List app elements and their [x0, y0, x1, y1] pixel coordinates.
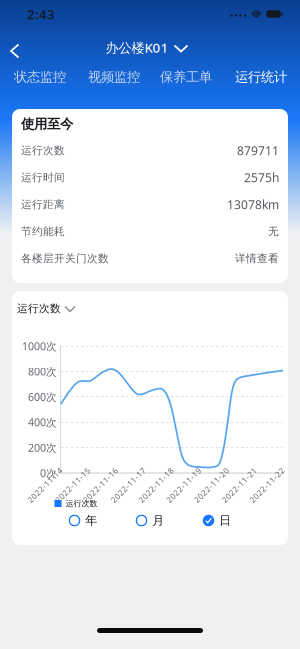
staticText: 运行统计 [235, 69, 287, 85]
button[interactable]: 各楼层开关门次数 [21, 245, 279, 272]
staticText: 2:43 [27, 5, 55, 23]
staticText: 各楼层开关门次数 [21, 252, 109, 265]
staticText: 2022-11-15 [50, 480, 96, 490]
button[interactable]: 运行统计 [231, 65, 291, 89]
button[interactable]: 办公楼K01 [105, 33, 187, 62]
staticText: 2022-11-19 [161, 480, 207, 490]
staticText: 2022-11-22 [244, 480, 290, 490]
staticText: 13078km [227, 196, 279, 212]
staticText: 运行次数 [65, 499, 97, 508]
staticText: 800次 [28, 364, 57, 378]
button[interactable]: Back [0, 28, 28, 57]
button[interactable]: 年 [65, 509, 101, 532]
staticText: 2022-11-17 [105, 480, 151, 490]
staticText: 无 [268, 225, 279, 238]
button[interactable]: 视频监控 [84, 65, 144, 89]
staticText: 节约能耗 [21, 225, 65, 238]
staticText: 1000次 [22, 339, 57, 353]
staticText: 日 [219, 513, 231, 528]
button[interactable]: 月 [132, 509, 168, 532]
staticText: 2022-11-20 [188, 480, 234, 490]
staticText: 运行次数 [21, 144, 65, 157]
staticText: 保养工单 [160, 69, 212, 85]
staticText: 2575h [244, 169, 279, 185]
button[interactable]: 保养工单 [156, 65, 216, 89]
staticText: 2022-11-14 [22, 480, 68, 490]
button[interactable]: 选择指标 [59, 300, 81, 317]
staticText: 0次 [40, 466, 57, 480]
staticText: 600次 [28, 390, 57, 404]
staticText: 400次 [28, 415, 57, 429]
staticText: 运行时间 [21, 171, 65, 184]
staticText: 详情查看 [235, 252, 279, 265]
staticText: 2022-11-18 [133, 480, 179, 490]
staticText: 运行距离 [21, 198, 65, 211]
staticText: 2022-11-16 [77, 480, 123, 490]
staticText: 状态监控 [14, 69, 66, 85]
staticText: 2022-11-21 [216, 480, 262, 490]
staticText: 年 [85, 513, 97, 528]
button[interactable]: 状态监控 [10, 65, 70, 89]
staticText: 运行次数 [17, 302, 61, 315]
button[interactable]: 日 [199, 509, 235, 532]
staticText: 879711 [237, 142, 279, 158]
staticText: 使用至今 [21, 116, 73, 132]
staticText: 200次 [28, 440, 57, 455]
staticText: 月 [152, 513, 164, 528]
staticText: 视频监控 [88, 69, 140, 85]
staticText: 办公楼K01 [105, 39, 168, 56]
